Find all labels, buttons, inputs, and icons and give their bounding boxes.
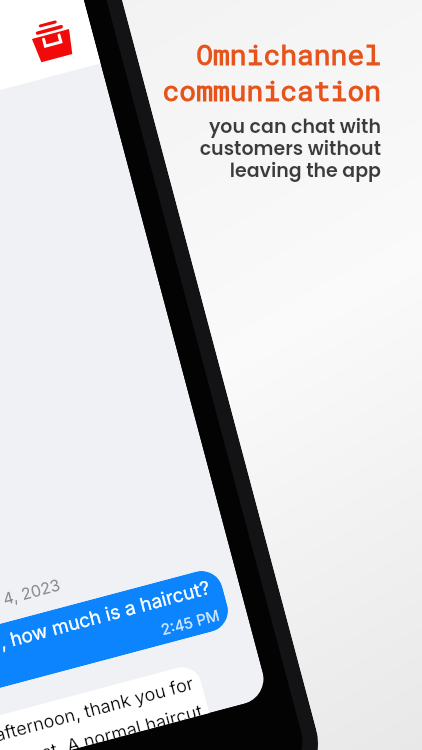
staticText: Hey, how much is a haircut? <box>0 576 213 663</box>
button[interactable]: Good afternoon, thank you for your reque… <box>0 663 209 750</box>
staticText: 2:45 PM <box>159 605 222 638</box>
staticText: Good afternoon, thank you for your reque… <box>0 672 204 750</box>
button[interactable]: Archive <box>27 15 76 64</box>
staticText: you can chat with customers without leav… <box>155 113 381 184</box>
staticText: Omnichannel communication <box>155 36 381 108</box>
button[interactable]: Hey, how much is a haircut? <box>0 566 233 698</box>
staticText: August 4, 2023 <box>0 574 63 623</box>
